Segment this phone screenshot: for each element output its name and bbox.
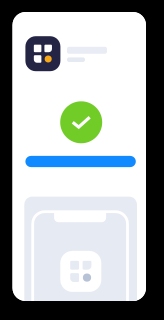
button[interactable]: Continue	[25, 156, 136, 167]
